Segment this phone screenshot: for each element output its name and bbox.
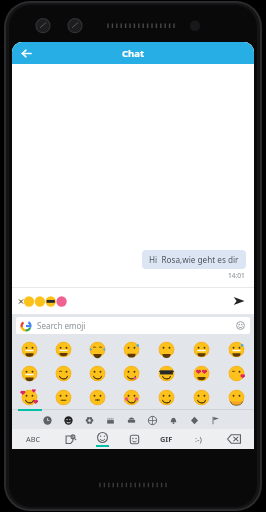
button[interactable]: Emoji bbox=[114, 337, 149, 361]
button[interactable]: Emoji bbox=[46, 385, 80, 409]
button[interactable]: Emoji bbox=[184, 337, 219, 361]
button[interactable]: Send bbox=[230, 292, 248, 310]
button[interactable]: Emoji bbox=[219, 385, 254, 409]
button[interactable]: Category 7 bbox=[184, 411, 205, 429]
staticText: Chat bbox=[122, 47, 145, 60]
staticText: Search emoji bbox=[37, 320, 86, 331]
button[interactable]: Search emoji bbox=[16, 317, 250, 334]
staticText: 14:01 bbox=[228, 271, 245, 280]
button[interactable]: Category 8 bbox=[205, 411, 226, 429]
button[interactable]: Stickers bbox=[118, 429, 150, 449]
button[interactable]: :-) bbox=[182, 429, 214, 449]
button[interactable]: Emoji bbox=[114, 361, 149, 385]
button[interactable]: Back bbox=[16, 43, 36, 63]
button[interactable]: Hi Rosa,wie geht es dir bbox=[142, 250, 246, 269]
button[interactable]: Emoji bbox=[86, 429, 118, 449]
button[interactable]: Emoji bbox=[80, 337, 114, 361]
button[interactable]: Category 4 bbox=[121, 411, 142, 429]
button[interactable]: Emoji bbox=[114, 385, 149, 409]
button[interactable]: Category 1 bbox=[58, 411, 79, 429]
button[interactable]: Emoji bbox=[219, 361, 254, 385]
button[interactable]: Send bbox=[12, 288, 254, 314]
staticText: Hi Rosa,wie geht es dir bbox=[149, 254, 239, 265]
button[interactable]: Emoji bbox=[219, 337, 254, 361]
button[interactable]: Emoji bbox=[80, 361, 114, 385]
button[interactable]: Emoji bbox=[149, 385, 184, 409]
staticText: ABC bbox=[26, 434, 41, 444]
button[interactable]: Emoji bbox=[12, 361, 46, 385]
button[interactable]: Emoji bbox=[149, 337, 184, 361]
button[interactable]: Emoji bbox=[80, 385, 114, 409]
button[interactable]: Category 6 bbox=[163, 411, 184, 429]
button[interactable]: Backspace bbox=[214, 429, 254, 449]
button[interactable]: ABC bbox=[12, 429, 54, 449]
staticText: GIF bbox=[160, 434, 173, 444]
button[interactable]: Emoji bbox=[149, 361, 184, 385]
button[interactable]: Emoji bbox=[46, 361, 80, 385]
button[interactable]: Search stickers bbox=[54, 429, 86, 449]
button[interactable]: Category 2 bbox=[79, 411, 100, 429]
button[interactable]: Emoji bbox=[184, 385, 219, 409]
staticText: :-) bbox=[195, 434, 202, 445]
button[interactable]: Emoji bbox=[46, 337, 80, 361]
button[interactable]: Category 5 bbox=[142, 411, 163, 429]
button[interactable]: Emoji bbox=[12, 337, 46, 361]
button[interactable]: Category 0 bbox=[36, 411, 58, 429]
button[interactable]: GIF bbox=[150, 429, 182, 449]
button[interactable]: Emoji bbox=[184, 361, 219, 385]
button[interactable]: Category 3 bbox=[100, 411, 121, 429]
button[interactable]: Emoji bbox=[12, 385, 46, 409]
